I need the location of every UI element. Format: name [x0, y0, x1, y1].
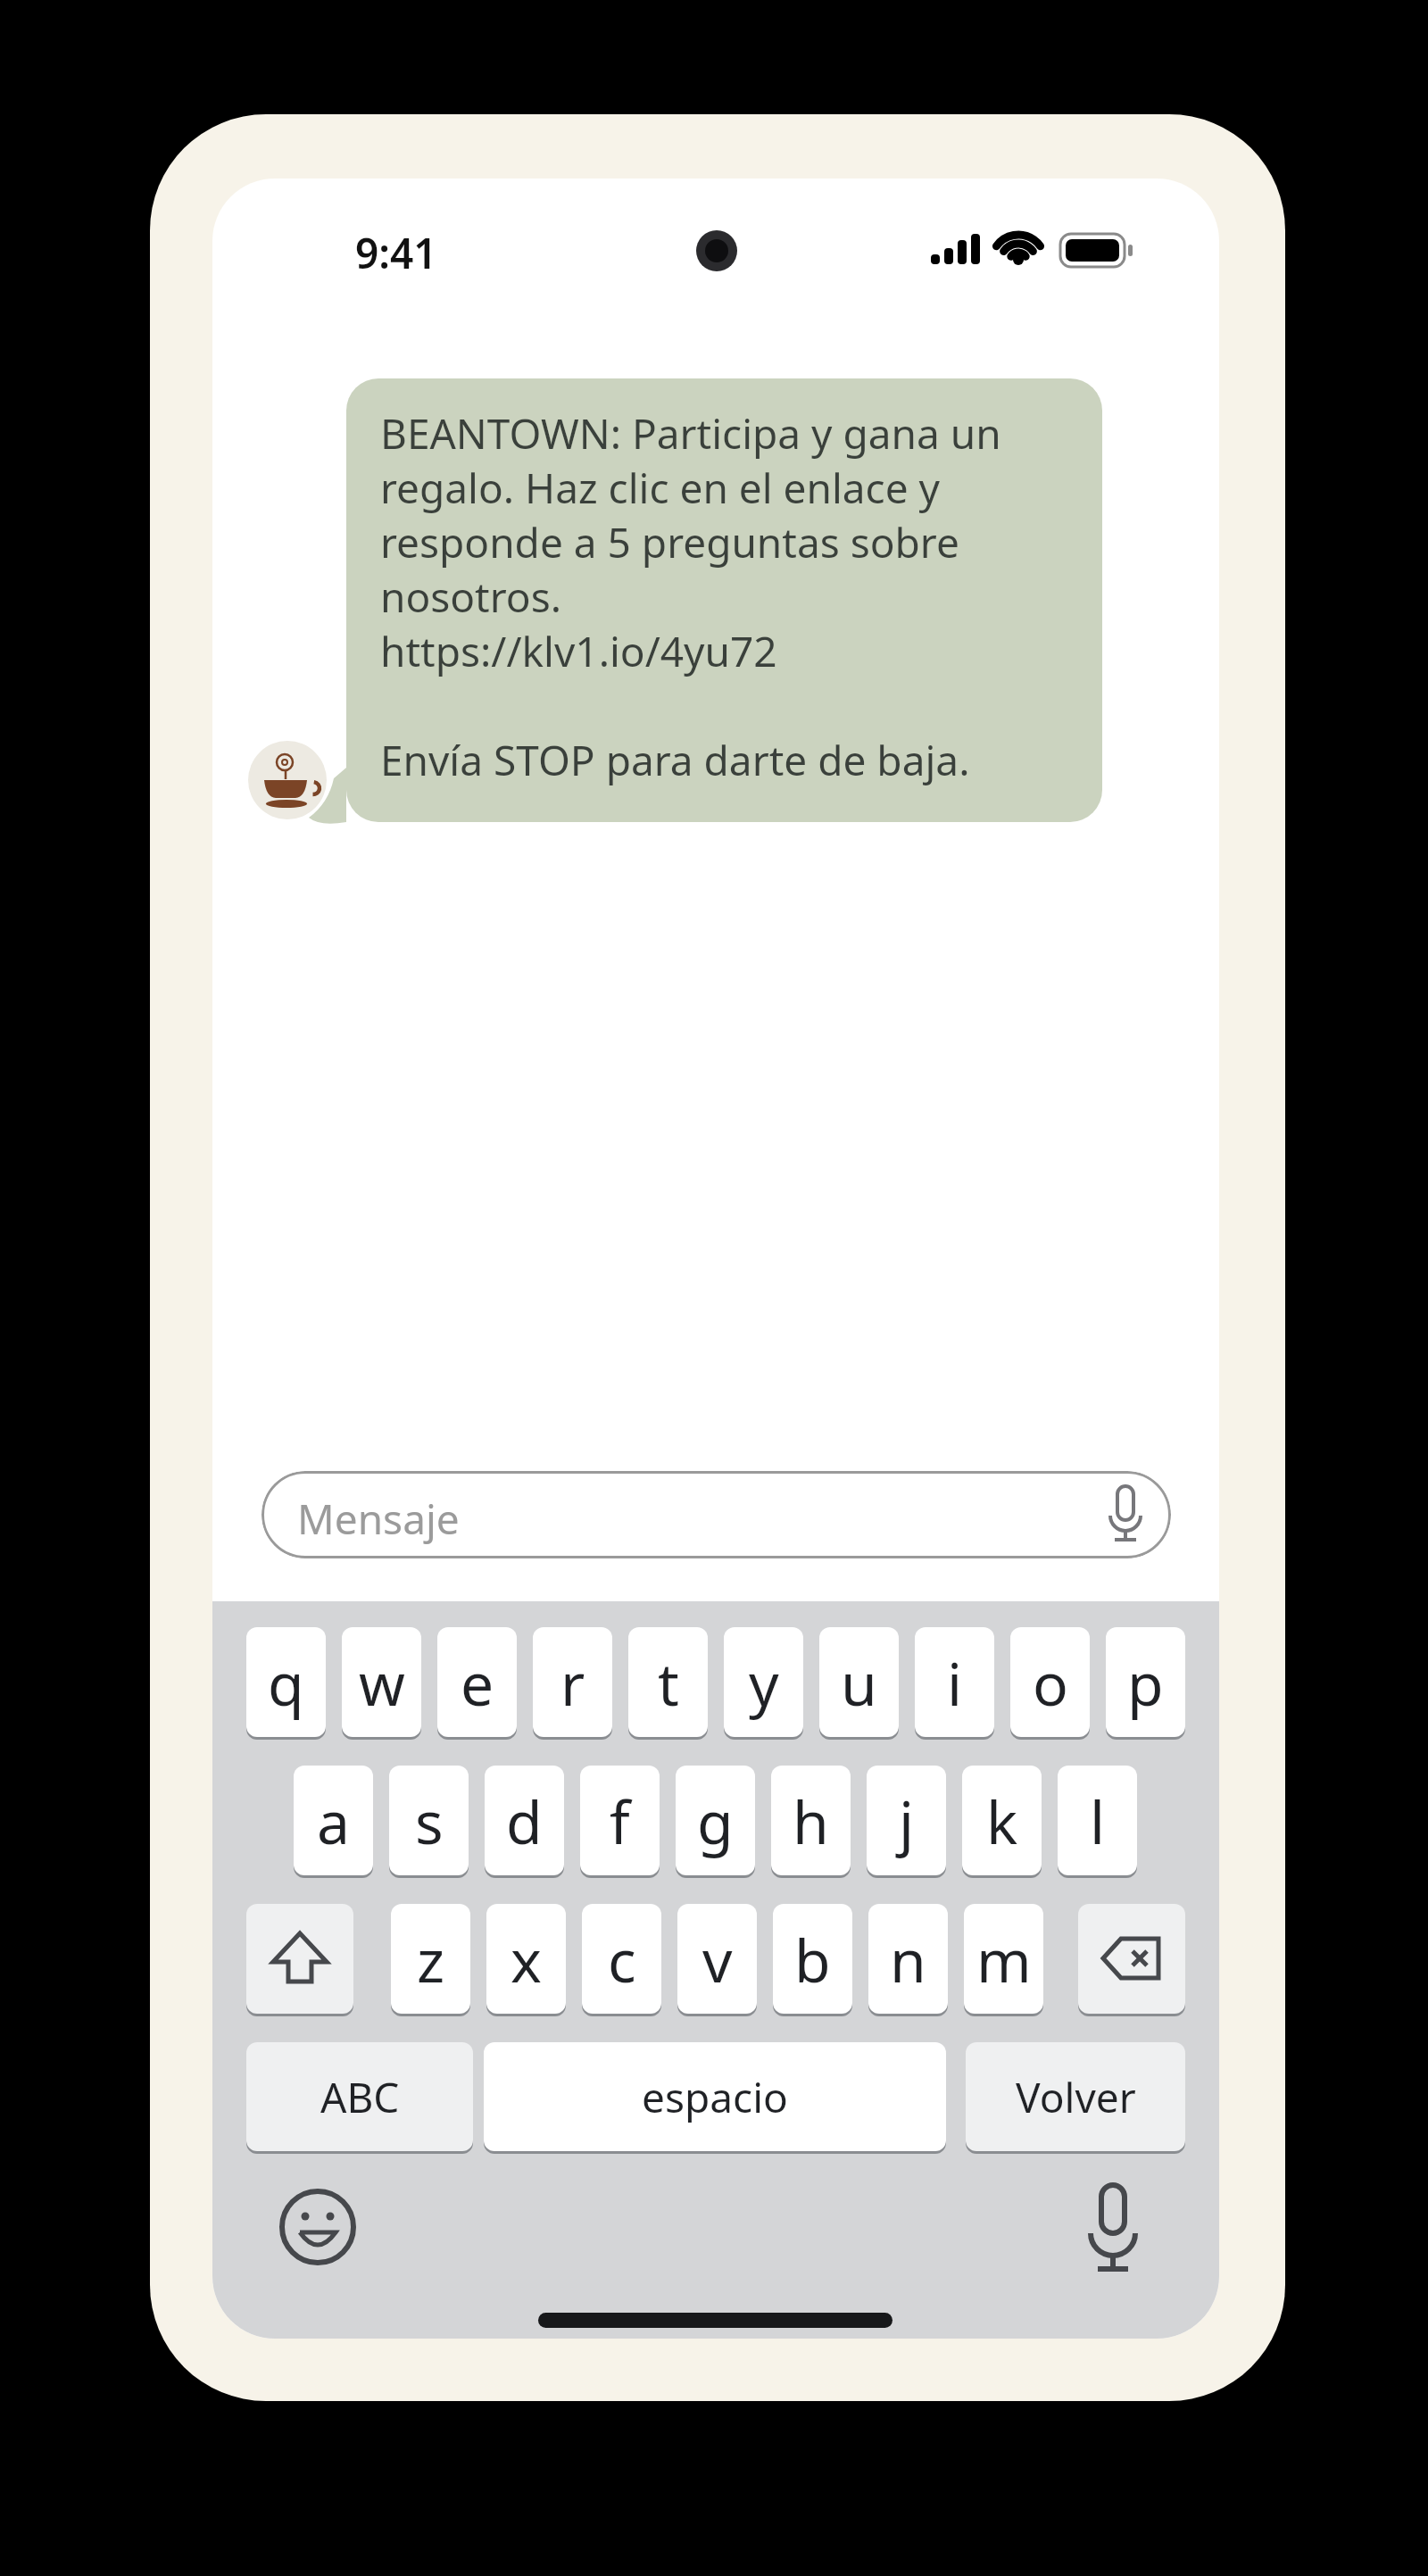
staticText: BEANTOWN: Participa y gana un regalo. Ha…	[380, 405, 1001, 788]
button[interactable]: e	[437, 1627, 517, 1737]
staticText: v	[702, 1919, 733, 1999]
staticText: Mensaje	[297, 1491, 460, 1547]
button[interactable]: p	[1106, 1627, 1185, 1737]
button[interactable]: BEANTOWN: Participa y gana un regalo. Ha…	[346, 378, 1102, 822]
button[interactable]: h	[771, 1766, 851, 1875]
button[interactable]: c	[582, 1904, 661, 2014]
button[interactable]: Mensaje	[262, 1471, 1171, 1558]
staticText: l	[1090, 1781, 1106, 1861]
staticText: p	[1127, 1642, 1164, 1723]
staticText: r	[560, 1642, 585, 1723]
staticText: q	[268, 1642, 304, 1723]
staticText: x	[511, 1919, 542, 1999]
button[interactable]: m	[964, 1904, 1043, 2014]
staticText: k	[986, 1781, 1018, 1861]
button[interactable]: u	[819, 1627, 899, 1737]
staticText: d	[506, 1781, 543, 1861]
staticText: e	[461, 1642, 494, 1723]
staticText: 9:41	[355, 225, 437, 281]
button[interactable]: i	[915, 1627, 994, 1737]
staticText: o	[1033, 1642, 1068, 1723]
button[interactable]: n	[868, 1904, 948, 2014]
staticText: y	[749, 1642, 779, 1723]
button[interactable]	[1078, 1904, 1185, 2014]
button[interactable]: j	[867, 1766, 946, 1875]
staticText: s	[415, 1781, 444, 1861]
staticText: n	[890, 1919, 926, 1999]
staticText: j	[899, 1781, 915, 1861]
button[interactable]: l	[1058, 1766, 1137, 1875]
staticText: m	[976, 1919, 1032, 1999]
button[interactable]: r	[533, 1627, 612, 1737]
staticText: h	[793, 1781, 829, 1861]
button[interactable]: y	[724, 1627, 803, 1737]
button[interactable]: k	[962, 1766, 1042, 1875]
button[interactable]	[246, 1904, 353, 2014]
staticText: a	[317, 1781, 351, 1861]
staticText: f	[610, 1781, 630, 1861]
staticText: ABC	[320, 2069, 400, 2125]
button[interactable]: t	[628, 1627, 708, 1737]
button[interactable]: espacio	[484, 2042, 946, 2151]
staticText: u	[841, 1642, 877, 1723]
button[interactable]: f	[580, 1766, 660, 1875]
staticText: w	[359, 1642, 405, 1723]
staticText: c	[608, 1919, 636, 1999]
button[interactable]: v	[677, 1904, 757, 2014]
button[interactable]: z	[391, 1904, 470, 2014]
button[interactable]: g	[676, 1766, 755, 1875]
button[interactable]: ABC	[246, 2042, 473, 2151]
staticText: z	[417, 1919, 445, 1999]
button[interactable]: w	[342, 1627, 421, 1737]
button[interactable]: o	[1010, 1627, 1090, 1737]
button[interactable]: d	[485, 1766, 564, 1875]
staticText: i	[947, 1642, 963, 1723]
button[interactable]: a	[294, 1766, 373, 1875]
staticText: g	[697, 1781, 734, 1861]
button[interactable]: s	[389, 1766, 469, 1875]
staticText: Volver	[1016, 2069, 1136, 2125]
staticText: t	[658, 1642, 679, 1723]
button[interactable]: q	[246, 1627, 326, 1737]
button[interactable]: b	[773, 1904, 852, 2014]
staticText: espacio	[642, 2069, 788, 2125]
staticText: b	[794, 1919, 831, 1999]
button[interactable]: x	[486, 1904, 566, 2014]
button[interactable]: Volver	[966, 2042, 1185, 2151]
